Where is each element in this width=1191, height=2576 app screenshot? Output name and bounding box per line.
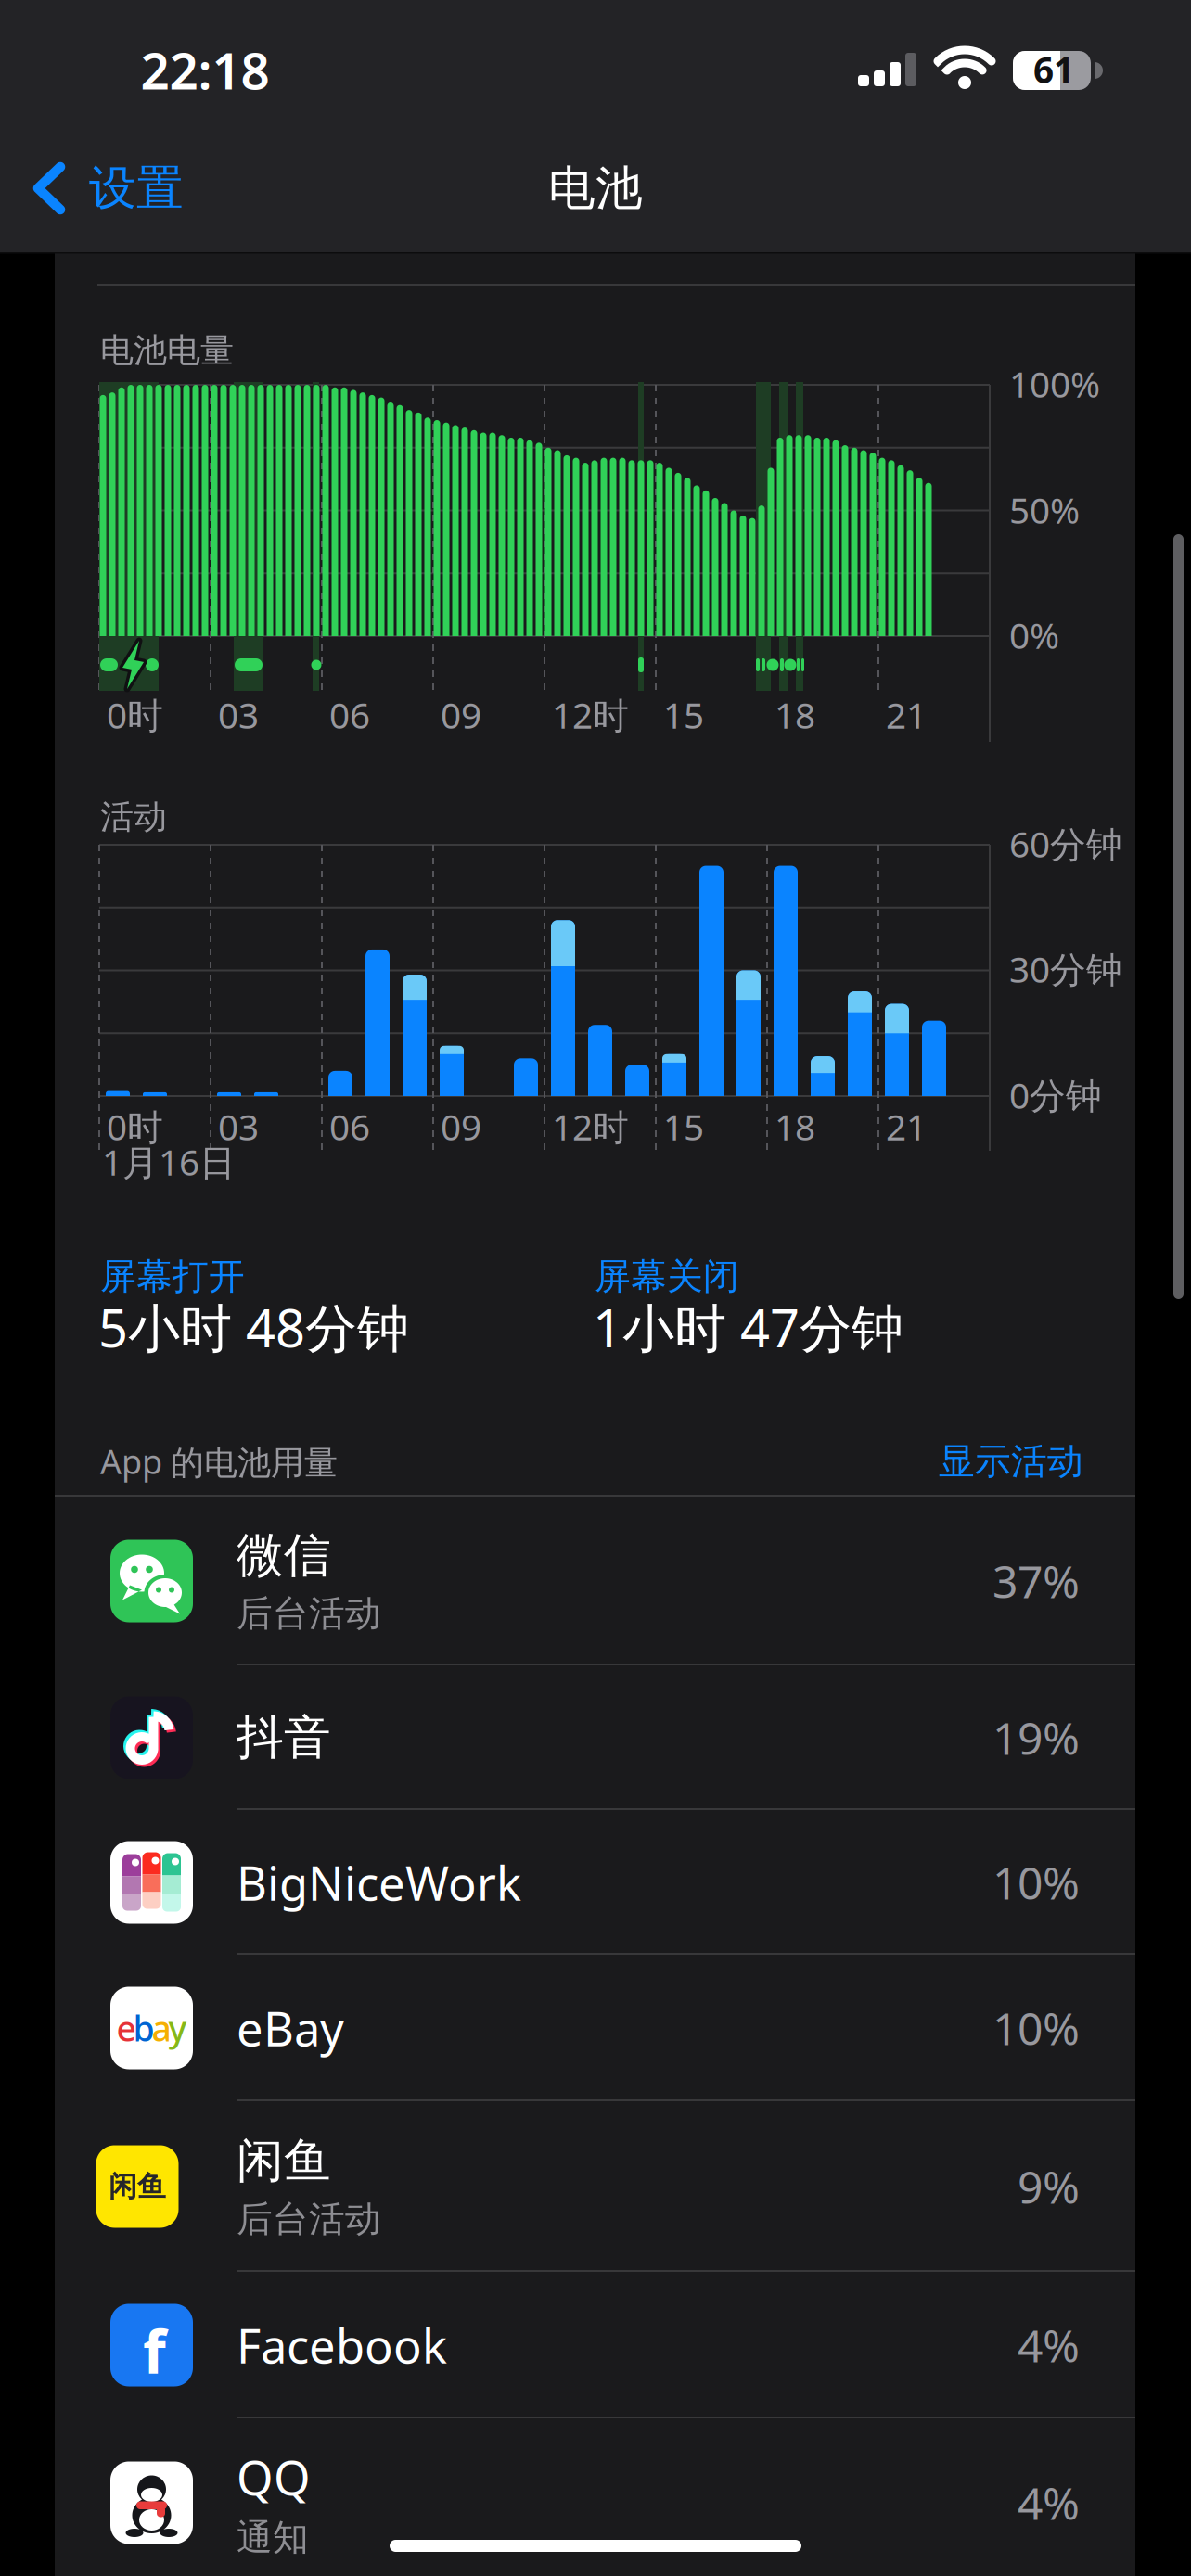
staticText: 100% bbox=[1009, 360, 1100, 407]
staticText: 0时 bbox=[107, 1103, 163, 1150]
button[interactable]: e bbox=[55, 1955, 1135, 2101]
staticText: 18 bbox=[775, 1103, 815, 1150]
staticText: 电池 bbox=[548, 159, 643, 217]
staticText: 09 bbox=[441, 691, 481, 738]
staticText: 0% bbox=[1009, 611, 1059, 659]
staticText: 03 bbox=[218, 691, 259, 738]
button[interactable]: 闲鱼 bbox=[55, 2101, 1135, 2272]
staticText: 06 bbox=[329, 691, 370, 738]
staticText: 21 bbox=[886, 691, 927, 738]
staticText: 电池电量 bbox=[100, 330, 234, 371]
button[interactable]: BigNiceWork bbox=[55, 1810, 1135, 1955]
staticText: 活动 bbox=[100, 797, 167, 838]
staticText: 0时 bbox=[107, 691, 163, 738]
staticText: 4% bbox=[1018, 2473, 1080, 2532]
staticText: 19% bbox=[992, 1708, 1080, 1767]
staticText: 微信 bbox=[237, 1526, 331, 1584]
staticText: 50% bbox=[1009, 486, 1080, 533]
staticText: f bbox=[143, 2311, 166, 2390]
staticText: a bbox=[152, 2005, 171, 2051]
staticText: 1小时 47分钟 bbox=[593, 1293, 903, 1362]
button[interactable]: 抖音 bbox=[55, 1665, 1135, 1810]
staticText: 屏幕打开 bbox=[100, 1255, 245, 1299]
staticText: 22:18 bbox=[141, 36, 269, 103]
staticText: 21 bbox=[886, 1103, 927, 1150]
staticText: 后台活动 bbox=[237, 2197, 381, 2241]
staticText: 03 bbox=[218, 1103, 259, 1150]
staticText: 10% bbox=[992, 1853, 1080, 1912]
staticText: 屏幕关闭 bbox=[595, 1255, 739, 1299]
staticText: 显示活动 bbox=[939, 1439, 1083, 1483]
button[interactable]: 微信 bbox=[55, 1497, 1135, 1665]
staticText: 30分钟 bbox=[1009, 945, 1122, 992]
staticText: 15 bbox=[663, 691, 704, 738]
staticText: 5小时 48分钟 bbox=[98, 1293, 409, 1362]
staticText: 37% bbox=[992, 1551, 1080, 1611]
staticText: 1月16日 bbox=[102, 1138, 236, 1185]
staticText: 0分钟 bbox=[1009, 1071, 1102, 1119]
staticText: BigNiceWork bbox=[237, 1851, 521, 1914]
staticText: 06 bbox=[329, 1103, 370, 1150]
button[interactable]: QQ bbox=[55, 2418, 1135, 2576]
staticText: 后台活动 bbox=[237, 1592, 381, 1636]
staticText: 闲鱼 bbox=[109, 2169, 166, 2204]
staticText: 12时 bbox=[552, 1103, 629, 1150]
button[interactable]: f bbox=[55, 2272, 1135, 2418]
staticText: Facebook bbox=[237, 2314, 447, 2376]
staticText: 61 bbox=[1033, 45, 1074, 93]
staticText: 18 bbox=[775, 691, 815, 738]
staticText: 抖音 bbox=[237, 1709, 331, 1767]
staticText: 4% bbox=[1018, 2316, 1080, 2375]
staticText: 15 bbox=[663, 1103, 704, 1150]
button[interactable]: 返回设置 bbox=[33, 156, 184, 221]
staticText: 09 bbox=[441, 1103, 481, 1150]
staticText: 通知 bbox=[237, 2516, 309, 2560]
staticText: 闲鱼 bbox=[237, 2132, 331, 2190]
staticText: App 的电池用量 bbox=[100, 1439, 338, 1484]
staticText: y bbox=[168, 2005, 187, 2051]
staticText: b bbox=[133, 2005, 154, 2051]
staticText: e bbox=[116, 2005, 136, 2051]
staticText: eBay bbox=[237, 1997, 344, 2059]
staticText: QQ bbox=[237, 2446, 311, 2508]
staticText: 9% bbox=[1018, 2157, 1080, 2216]
staticText: 12时 bbox=[552, 691, 629, 738]
staticText: 60分钟 bbox=[1009, 820, 1122, 867]
staticText: 10% bbox=[992, 1998, 1080, 2057]
staticText: 设置 bbox=[89, 159, 184, 217]
button[interactable]: 显示活动 bbox=[861, 1435, 1083, 1487]
